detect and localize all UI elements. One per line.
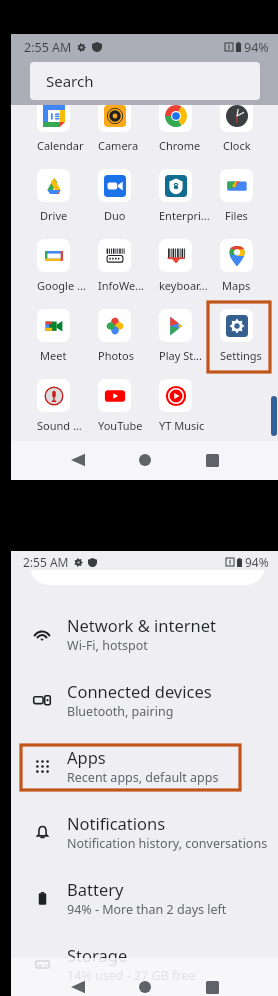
button[interactable]: Play St... (159, 309, 192, 365)
staticText: Clock (223, 138, 251, 153)
button[interactable]: Chrome (159, 99, 192, 155)
staticText: Play St... (159, 348, 192, 363)
staticText: Notification history, conversations (67, 835, 268, 852)
staticText: Recent apps, default apps (67, 769, 219, 786)
button[interactable]: Apps (11, 733, 278, 799)
button[interactable]: YT Music (159, 379, 192, 435)
button[interactable]: Battery (11, 865, 278, 931)
button[interactable]: Enterpri... (159, 169, 192, 225)
button[interactable]: Maps (220, 239, 253, 295)
staticText: 94% - More than 2 days left (67, 901, 227, 918)
staticText: 2:55 AM (24, 39, 72, 56)
button[interactable]: Connected devices (11, 667, 278, 733)
staticText: Duo (104, 208, 126, 223)
button[interactable]: Recents (198, 973, 226, 996)
staticText: Apps (67, 746, 106, 768)
staticText: 94% (245, 554, 269, 570)
button[interactable]: Calendar (37, 99, 70, 155)
staticText: YouTube (98, 418, 131, 433)
staticText: Search (46, 71, 94, 91)
button[interactable]: Camera (98, 99, 131, 155)
staticText: Photos (98, 348, 131, 363)
staticText: 14% used - 27 GB free (67, 967, 196, 984)
button[interactable]: Google ... (37, 239, 70, 295)
button[interactable]: Notifications (11, 799, 278, 865)
button[interactable]: Meet (37, 309, 70, 365)
button[interactable]: Back (64, 973, 92, 996)
staticText: Enterpri... (159, 208, 192, 223)
button[interactable]: Sound ... (37, 379, 70, 435)
staticText: Google ... (37, 278, 70, 293)
button[interactable]: Network & internet (11, 601, 278, 667)
button[interactable]: Home (131, 446, 159, 474)
staticText: 2:55 AM (23, 554, 69, 570)
staticText: Meet (40, 348, 67, 363)
staticText: Calendar (37, 138, 70, 153)
staticText: Drive (40, 208, 68, 223)
staticText: InfoWe... (98, 278, 131, 293)
staticText: Camera (98, 138, 131, 153)
button[interactable]: Photos (98, 309, 131, 365)
button[interactable]: Duo (98, 169, 131, 225)
button[interactable]: InfoWe... (98, 239, 131, 295)
staticText: Files (225, 208, 248, 223)
button[interactable]: keyboar... (159, 239, 192, 295)
staticText: Sound ... (37, 418, 70, 433)
staticText: Bluetooth, pairing (67, 703, 174, 720)
button[interactable]: Settings (220, 309, 253, 365)
staticText: YT Music (159, 418, 192, 433)
button[interactable] (30, 551, 265, 585)
staticText: Network & internet (67, 614, 217, 636)
button[interactable]: Drive (37, 169, 70, 225)
button[interactable]: Clock (220, 99, 253, 155)
button[interactable]: Storage (11, 931, 278, 996)
staticText: Connected devices (67, 680, 212, 702)
staticText: Wi-Fi, hotspot (67, 637, 148, 654)
button[interactable]: YouTube (98, 379, 131, 435)
button[interactable]: Home (131, 973, 159, 996)
staticText: keyboar... (159, 278, 192, 293)
staticText: Notifications (67, 812, 166, 834)
staticText: 94% (244, 39, 269, 56)
button[interactable]: Files (220, 169, 253, 225)
button[interactable]: Recents (198, 446, 226, 474)
staticText: Maps (222, 278, 251, 293)
staticText: Settings (220, 348, 253, 363)
staticText: Battery (67, 878, 124, 900)
staticText: Chrome (159, 138, 192, 153)
button[interactable]: Search (30, 62, 260, 100)
staticText: Storage (67, 944, 128, 966)
button[interactable]: Back (64, 446, 92, 474)
